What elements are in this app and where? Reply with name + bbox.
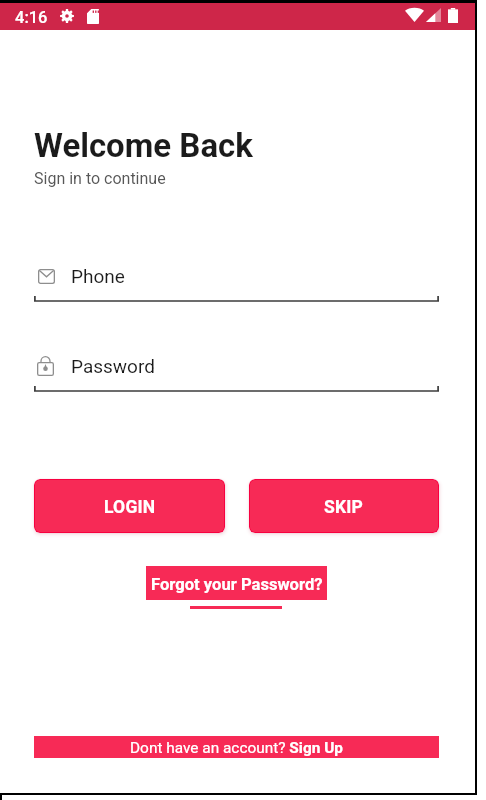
staticText: SKIP <box>324 497 364 518</box>
button[interactable]: Forgot your Password? <box>146 566 327 609</box>
button[interactable]: SKIP <box>249 479 439 533</box>
staticText: Dont have an account? Sign Up <box>130 739 343 757</box>
staticText: LOGIN <box>104 497 156 518</box>
other: Password <box>37 356 54 376</box>
button[interactable]: Phone <box>34 255 439 313</box>
staticText: 4:16 <box>15 8 48 27</box>
other: Settings <box>60 9 74 23</box>
staticText: Forgot your Password? <box>151 575 323 594</box>
button[interactable]: LOGIN <box>34 479 225 533</box>
button[interactable]: Password <box>34 345 439 403</box>
staticText: Phone <box>71 265 125 287</box>
button[interactable]: Dont have an account? Sign Up <box>34 736 439 758</box>
staticText: Sign in to continue <box>34 169 166 188</box>
staticText: Welcome Back <box>34 126 253 165</box>
staticText: Password <box>71 355 155 377</box>
other: Phone <box>38 269 55 284</box>
